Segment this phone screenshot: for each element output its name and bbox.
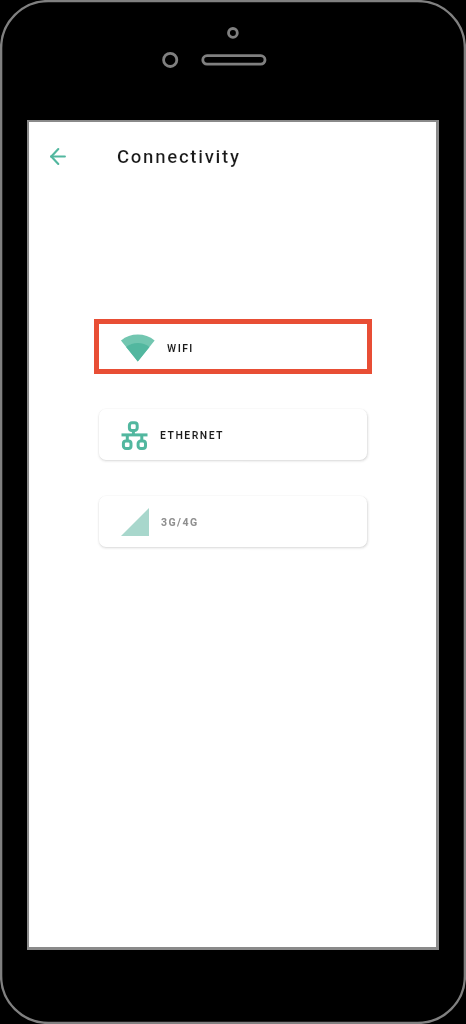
- staticText: 3G/4G: [161, 516, 199, 528]
- button[interactable]: WIFI: [99, 324, 367, 369]
- button[interactable]: ETHERNET: [99, 409, 367, 460]
- staticText: ETHERNET: [160, 429, 225, 441]
- button[interactable]: Back: [36, 134, 80, 178]
- button[interactable]: 3G/4G: [99, 496, 367, 547]
- staticText: WIFI: [167, 342, 194, 354]
- staticText: Connectivity: [117, 146, 241, 168]
